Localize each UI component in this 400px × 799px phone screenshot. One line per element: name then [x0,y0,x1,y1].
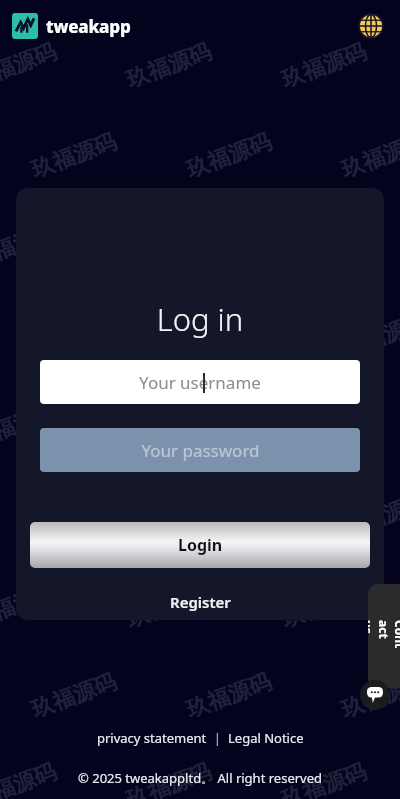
staticText: tweakapp [46,15,131,38]
button[interactable]: privacy statement [97,729,207,747]
staticText: 玖福源码 [278,578,370,634]
staticText: 玖福源码 [28,668,120,724]
staticText: 玖福源码 [278,758,370,799]
staticText: 玖福源码 [123,38,215,94]
staticText: 玖福源码 [338,488,400,544]
staticText: 玖福源码 [338,308,400,364]
staticText: © 2025 tweakappltd。 All right reserved [78,769,323,787]
staticText: 玖福源码 [28,308,120,364]
staticText: 玖福源码 [28,128,120,184]
staticText: Your password [141,439,260,462]
staticText: Contact us [368,620,400,652]
staticText: 玖福源码 [28,488,120,544]
button[interactable]: Your username [40,360,360,404]
staticText: 玖福源码 [123,398,215,454]
staticText: 玖福源码 [0,38,60,94]
staticText: 玖福源码 [278,38,370,94]
button[interactable]: Language [354,9,388,43]
staticText: privacy statement [97,729,207,747]
button[interactable]: Register [16,588,384,616]
staticText: 玖福源码 [183,128,275,184]
staticText: 玖福源码 [338,668,400,724]
staticText: 玖福源码 [338,128,400,184]
staticText: Log in [16,298,384,340]
staticText: Legal Notice [228,729,304,747]
button[interactable]: tweakapp [12,13,131,39]
staticText: Register [170,592,231,612]
staticText: 玖福源码 [0,218,60,274]
staticText: 玖福源码 [183,308,275,364]
staticText: 玖福源码 [123,578,215,634]
button[interactable]: Chat [360,680,390,710]
button[interactable]: Your password [40,428,360,472]
staticText: 玖福源码 [123,758,215,799]
staticText: 玖福源码 [183,668,275,724]
staticText: 玖福源码 [0,398,60,454]
staticText: 玖福源码 [0,578,60,634]
staticText: | [207,729,228,747]
button[interactable]: Contact us [368,584,400,688]
button[interactable]: Legal Notice [228,729,304,747]
staticText: Login [178,534,223,556]
button[interactable]: Login [30,522,370,568]
staticText: Your username [139,371,261,394]
staticText: 玖福源码 [0,758,60,799]
staticText: 玖福源码 [183,488,275,544]
staticText: 玖福源码 [278,398,370,454]
